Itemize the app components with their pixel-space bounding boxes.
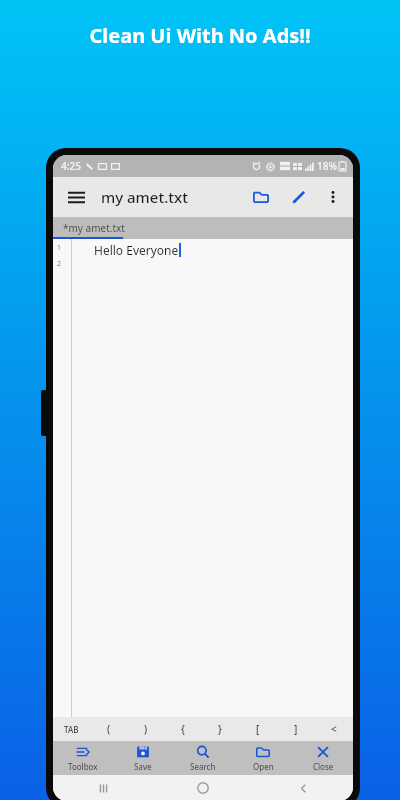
staticText: [ (256, 722, 260, 736)
staticText: Search (190, 761, 216, 772)
staticText: Hello Everyone (94, 242, 179, 258)
staticText: ( (107, 722, 111, 736)
button[interactable]: More options (319, 183, 347, 211)
staticText: *my amet.txt (63, 221, 125, 235)
button[interactable]: Home (153, 775, 253, 800)
button[interactable]: < (315, 717, 353, 741)
button[interactable]: 1 (53, 239, 353, 717)
staticText: TAB (64, 724, 79, 735)
button[interactable]: Open folder (245, 181, 277, 213)
staticText: } (218, 722, 222, 736)
button[interactable]: Search (173, 741, 233, 775)
button[interactable]: Open (233, 741, 293, 775)
staticText: Open (253, 761, 274, 772)
button[interactable]: Toolbox (53, 741, 113, 775)
staticText: < (331, 722, 337, 736)
button[interactable]: Back (253, 775, 353, 800)
button[interactable]: Close (293, 741, 353, 775)
button[interactable]: Edit (283, 181, 315, 213)
staticText: Close (313, 761, 334, 772)
button[interactable]: TAB (53, 717, 90, 741)
button[interactable]: Save (113, 741, 173, 775)
staticText: 18% (317, 159, 337, 173)
button[interactable]: ( (90, 717, 127, 741)
button[interactable]: } (201, 717, 239, 741)
staticText: Save (134, 761, 152, 772)
staticText: ) (144, 722, 148, 736)
button[interactable]: Recents (53, 775, 153, 800)
staticText: 4:25 (61, 159, 81, 173)
staticText: ] (294, 722, 298, 736)
staticText: Toolbox (68, 761, 98, 772)
staticText: my amet.txt (101, 187, 188, 207)
staticText: Clean Ui With No Ads!! (89, 22, 311, 49)
staticText: { (181, 722, 185, 736)
button[interactable]: ] (277, 717, 315, 741)
button[interactable]: *my amet.txt (53, 217, 353, 239)
staticText: 1 (57, 243, 62, 253)
staticText: 2 (57, 259, 62, 269)
button[interactable]: [ (239, 717, 277, 741)
button[interactable]: { (164, 717, 201, 741)
button[interactable]: Menu (59, 180, 93, 214)
button[interactable]: ) (127, 717, 164, 741)
